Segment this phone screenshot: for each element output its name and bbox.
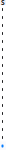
button[interactable]: Settings tab [0, 141, 6, 150]
button[interactable] [0, 37, 6, 45]
button[interactable] [0, 93, 6, 101]
button[interactable] [0, 69, 6, 77]
button[interactable] [0, 85, 6, 93]
button[interactable] [0, 5, 6, 13]
button[interactable] [0, 125, 6, 133]
button[interactable] [0, 133, 6, 141]
button[interactable] [0, 77, 6, 85]
button[interactable] [0, 53, 6, 61]
button[interactable] [0, 109, 6, 117]
button[interactable] [0, 45, 6, 53]
button[interactable] [0, 13, 6, 21]
staticText: S [1, 0, 5, 7]
button[interactable] [0, 117, 6, 125]
button[interactable] [0, 61, 6, 69]
button[interactable] [0, 29, 6, 37]
button[interactable] [0, 101, 6, 109]
button[interactable] [0, 21, 6, 29]
